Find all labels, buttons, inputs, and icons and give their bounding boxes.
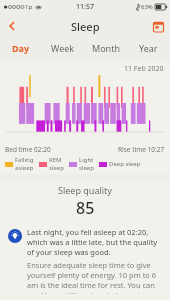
- button[interactable]: Calendar: [146, 14, 170, 38]
- staticText: 11 Feb 2020: [124, 64, 164, 74]
- button[interactable]: Day: [0, 38, 42, 58]
- button[interactable]: Last night, you fell asleep at 02:20, wh…: [8, 227, 162, 294]
- staticText: Last night, you fell asleep at 02:20, wh…: [27, 227, 162, 257]
- staticText: Sleep: [71, 19, 100, 34]
- staticText: Month: [92, 42, 120, 54]
- staticText: Falling: [15, 156, 34, 164]
- staticText: Week: [51, 42, 75, 54]
- button[interactable]: Week: [42, 38, 84, 58]
- staticText: Sleep quality: [58, 184, 112, 196]
- staticText: Deep sleep: [109, 160, 141, 168]
- staticText: 1p: [25, 3, 33, 11]
- staticText: Day: [12, 42, 30, 54]
- button[interactable]: Back: [0, 14, 24, 38]
- staticText: sleep: [79, 164, 94, 172]
- button[interactable]: Month: [84, 38, 127, 58]
- staticText: REM: [49, 156, 62, 164]
- staticText: Rise time 10:27: [118, 145, 165, 154]
- staticText: 85: [76, 197, 95, 219]
- staticText: Light: [79, 156, 94, 164]
- staticText: sleep: [49, 164, 64, 172]
- staticText: Year: [139, 42, 158, 54]
- staticText: 11:57: [76, 2, 94, 12]
- button[interactable]: Year: [127, 38, 170, 58]
- staticText: Bed time 02:20: [5, 145, 51, 154]
- staticText: 63%: [141, 3, 153, 11]
- staticText: Ensure adequate sleep time to give yours…: [27, 260, 162, 294]
- staticText: asleep: [15, 164, 34, 172]
